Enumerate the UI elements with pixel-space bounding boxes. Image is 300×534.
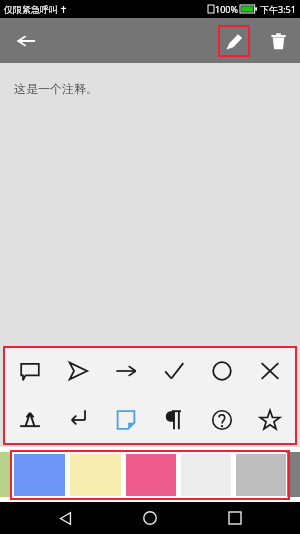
button[interactable]: Star xyxy=(249,398,291,442)
button[interactable]: Help xyxy=(201,398,243,442)
button[interactable]: Delete xyxy=(262,25,294,57)
button[interactable]: Check xyxy=(153,349,195,393)
button[interactable]: Back xyxy=(45,502,85,534)
button[interactable]: Comment xyxy=(9,349,51,393)
button[interactable]: Sticky note xyxy=(105,398,147,442)
button[interactable]: Send xyxy=(57,349,99,393)
button[interactable]: Circle xyxy=(201,349,243,393)
button[interactable]: Edit xyxy=(218,25,250,57)
button[interactable]: Insert xyxy=(9,398,51,442)
button[interactable]: New paragraph xyxy=(57,398,99,442)
button[interactable]: Back xyxy=(8,23,44,59)
staticText: 下午3:51 xyxy=(260,3,296,15)
staticText: 100% xyxy=(215,3,238,15)
button[interactable]: Close xyxy=(249,349,291,393)
button[interactable]: Paragraph xyxy=(153,398,195,442)
button[interactable]: Arrow xyxy=(105,349,147,393)
button[interactable]: Recents xyxy=(215,502,255,534)
staticText: 仅限紧急呼叫 xyxy=(4,4,58,15)
staticText: 这是一个注释。 xyxy=(14,81,98,96)
button[interactable]: 这是一个注释。 xyxy=(0,63,300,344)
button[interactable]: Home xyxy=(130,502,170,534)
